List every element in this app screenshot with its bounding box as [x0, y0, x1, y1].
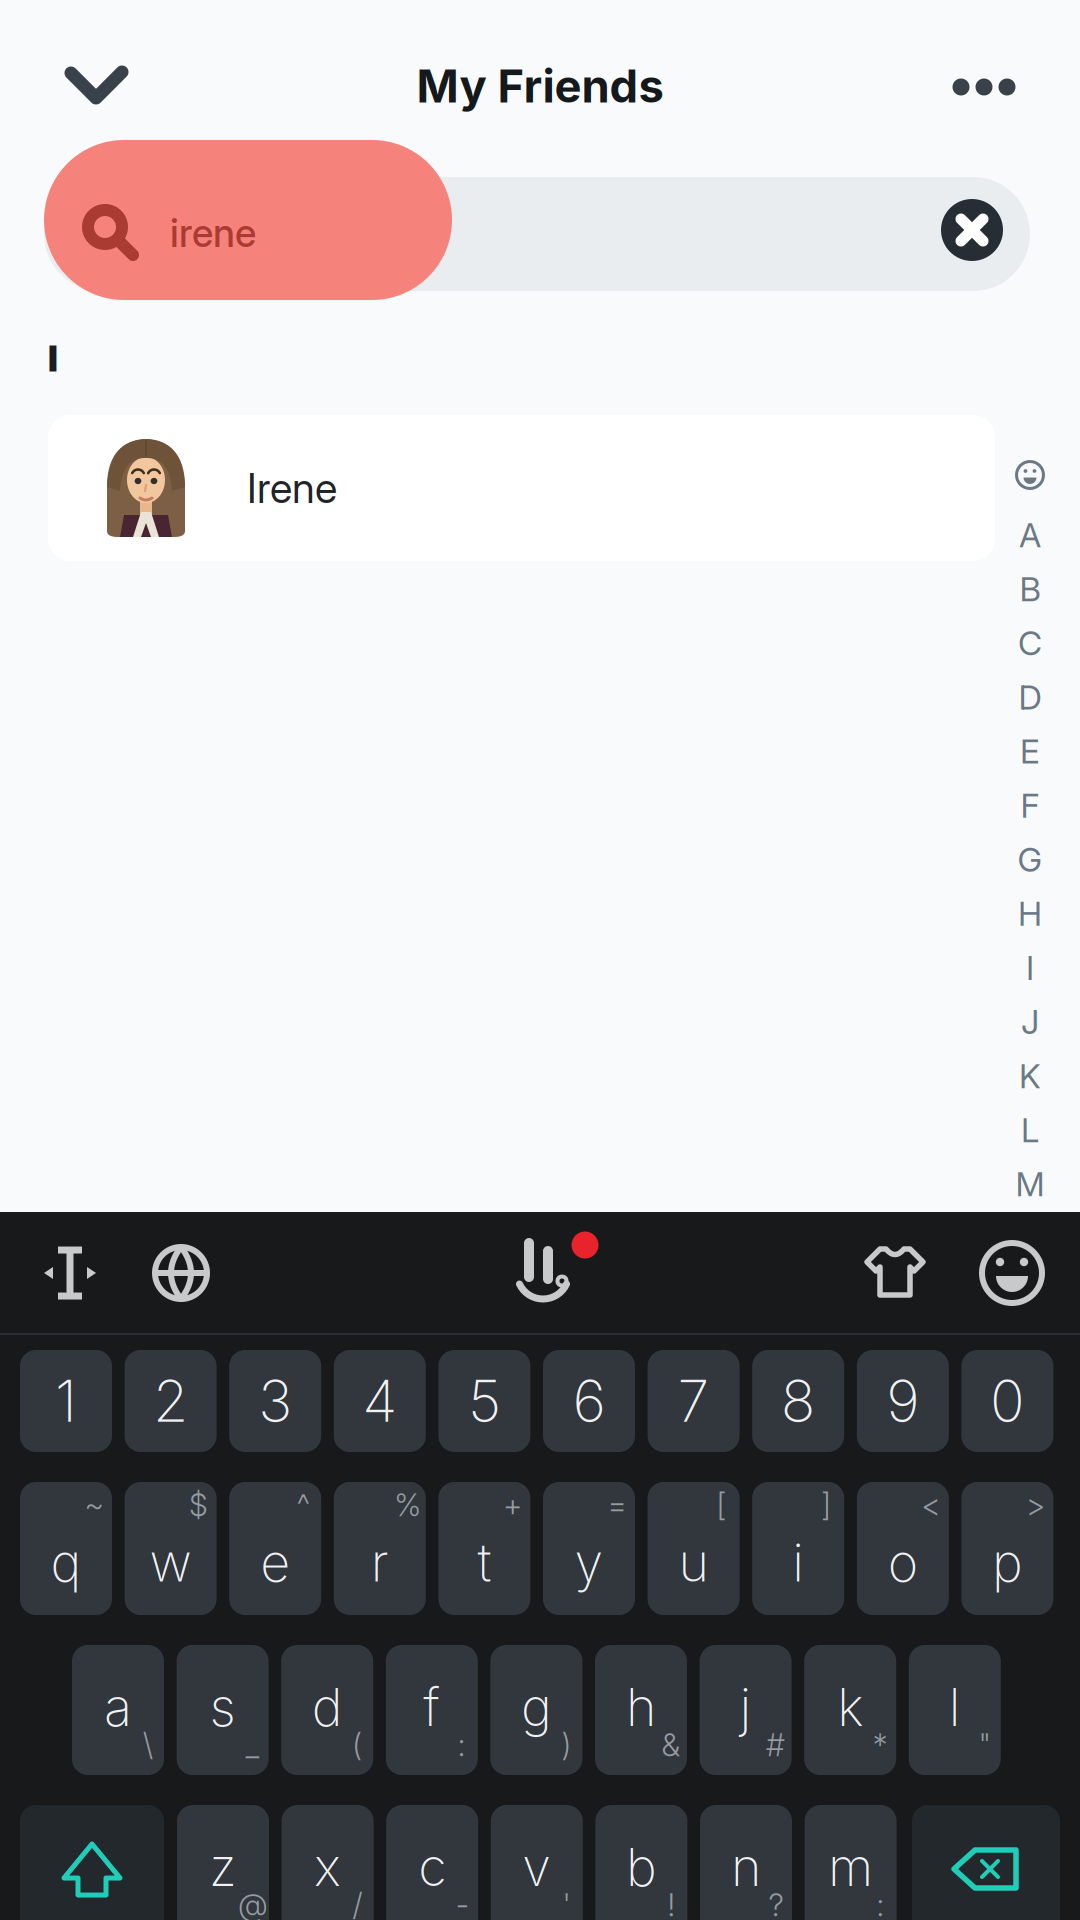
button[interactable]: v: [491, 1805, 583, 1920]
staticText: a: [104, 1675, 132, 1738]
button[interactable]: 4: [334, 1350, 426, 1452]
button[interactable]: I: [1008, 944, 1052, 992]
button[interactable]: [510, 1237, 580, 1307]
button[interactable]: K: [1008, 1052, 1052, 1100]
button[interactable]: c: [386, 1805, 478, 1920]
button[interactable]: [65, 53, 129, 117]
button[interactable]: t: [438, 1482, 530, 1615]
staticText: d: [312, 1675, 343, 1738]
staticText: ': [563, 1886, 571, 1920]
button[interactable]: [912, 1805, 1060, 1920]
button[interactable]: Irene: [48, 415, 995, 561]
button[interactable]: 0: [961, 1350, 1053, 1452]
button[interactable]: 6: [543, 1350, 635, 1452]
button[interactable]: 3: [229, 1350, 321, 1452]
button[interactable]: [952, 78, 1016, 96]
button[interactable]: A: [1008, 511, 1052, 559]
staticText: _: [246, 1726, 260, 1763]
button[interactable]: J: [1008, 998, 1052, 1046]
staticText: 0: [990, 1366, 1025, 1436]
button[interactable]: i: [752, 1482, 844, 1615]
staticText: G: [1017, 839, 1042, 880]
staticText: z: [209, 1835, 237, 1898]
staticText: i: [792, 1531, 804, 1594]
button[interactable]: n: [700, 1805, 792, 1920]
button[interactable]: z: [177, 1805, 269, 1920]
staticText: ): [561, 1726, 571, 1763]
button[interactable]: G: [1008, 836, 1052, 884]
button[interactable]: k: [804, 1645, 896, 1775]
staticText: m: [828, 1835, 873, 1898]
button[interactable]: d: [281, 1645, 373, 1775]
staticText: 7: [678, 1366, 710, 1436]
staticText: %: [394, 1486, 421, 1523]
staticText: \: [143, 1726, 153, 1763]
staticText: r: [371, 1531, 389, 1594]
staticText: 2: [153, 1366, 188, 1436]
button[interactable]: a: [72, 1645, 164, 1775]
button[interactable]: r: [334, 1482, 426, 1615]
staticText: B: [1019, 569, 1040, 609]
staticText: A: [1019, 515, 1041, 555]
staticText: ~: [84, 1486, 103, 1523]
button[interactable]: 2: [125, 1350, 217, 1452]
button[interactable]: h: [595, 1645, 687, 1775]
staticText: M: [1015, 1164, 1044, 1204]
button[interactable]: D: [1008, 673, 1052, 721]
staticText: 5: [468, 1366, 501, 1436]
button[interactable]: 5: [438, 1350, 530, 1452]
button[interactable]: [941, 199, 1003, 261]
button[interactable]: f: [386, 1645, 478, 1775]
staticText: l: [949, 1675, 961, 1738]
button[interactable]: y: [543, 1482, 635, 1615]
staticText: b: [626, 1835, 657, 1898]
staticText: L: [1021, 1110, 1039, 1150]
staticText: E: [1020, 731, 1040, 771]
button[interactable]: H: [1008, 890, 1052, 938]
button[interactable]: s: [177, 1645, 269, 1775]
staticText: s: [210, 1675, 236, 1738]
button[interactable]: b: [595, 1805, 687, 1920]
staticText: x: [314, 1835, 341, 1898]
staticText: Irene: [247, 463, 337, 513]
button[interactable]: x: [282, 1805, 374, 1920]
button[interactable]: [153, 1245, 209, 1301]
button[interactable]: irene: [44, 140, 1030, 300]
button[interactable]: [866, 1246, 924, 1298]
button[interactable]: E: [1008, 727, 1052, 775]
button[interactable]: 1: [20, 1350, 112, 1452]
button[interactable]: [44, 1247, 96, 1299]
button[interactable]: w: [125, 1482, 217, 1615]
staticText: I: [1026, 948, 1034, 988]
button[interactable]: e: [229, 1482, 321, 1615]
button[interactable]: L: [1008, 1106, 1052, 1154]
staticText: c: [418, 1835, 446, 1898]
button[interactable]: 8: [752, 1350, 844, 1452]
button[interactable]: j: [700, 1645, 792, 1775]
button[interactable]: M: [1008, 1160, 1052, 1208]
staticText: u: [679, 1531, 709, 1594]
button[interactable]: g: [490, 1645, 582, 1775]
staticText: F: [1020, 785, 1039, 826]
button[interactable]: 9: [857, 1350, 949, 1452]
button[interactable]: [979, 1240, 1045, 1306]
button[interactable]: m: [805, 1805, 897, 1920]
staticText: 3: [258, 1366, 292, 1436]
button[interactable]: C: [1008, 619, 1052, 667]
staticText: 6: [572, 1366, 605, 1436]
staticText: ^: [297, 1486, 310, 1523]
button[interactable]: 7: [648, 1350, 740, 1452]
staticText: +: [503, 1486, 522, 1523]
button[interactable]: u: [648, 1482, 740, 1615]
button[interactable]: q: [20, 1482, 112, 1615]
button[interactable]: p: [961, 1482, 1053, 1615]
button[interactable]: l: [909, 1645, 1001, 1775]
staticText: f: [423, 1675, 440, 1738]
staticText: #: [766, 1726, 785, 1763]
button[interactable]: [20, 1805, 164, 1920]
button[interactable]: [1015, 460, 1045, 490]
staticText: ": [979, 1726, 991, 1763]
button[interactable]: B: [1008, 565, 1052, 613]
button[interactable]: F: [1008, 781, 1052, 829]
button[interactable]: o: [857, 1482, 949, 1615]
